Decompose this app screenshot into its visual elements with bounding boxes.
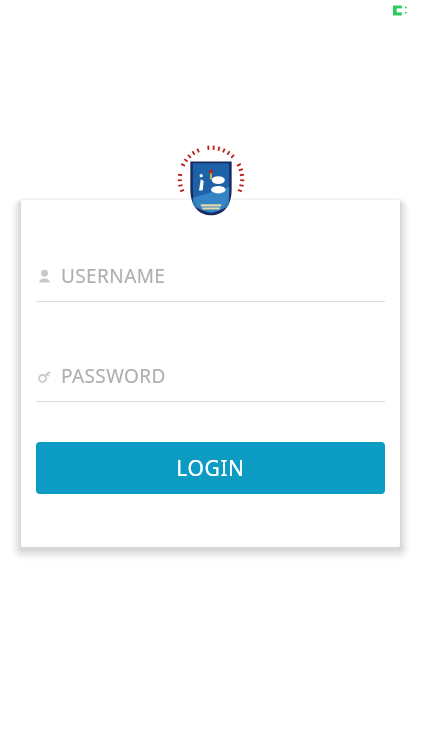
button[interactable]: Username (36, 261, 385, 302)
staticText: PASSWORD (61, 363, 166, 389)
staticText: USERNAME (61, 263, 166, 289)
button[interactable]: Password (36, 361, 385, 402)
other: School logo (176, 146, 246, 216)
other: Password (36, 368, 53, 385)
other: App status (393, 4, 410, 17)
button[interactable]: LOGIN (36, 442, 385, 494)
staticText: LOGIN (176, 454, 245, 483)
other: Username (36, 268, 53, 285)
